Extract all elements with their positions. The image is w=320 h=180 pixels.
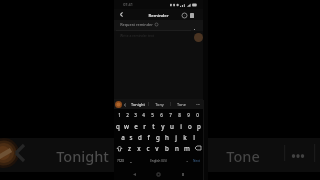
- button[interactable]: Recents: [178, 170, 187, 179]
- button[interactable]: w: [122, 120, 131, 131]
- button[interactable]: Home: [154, 170, 163, 179]
- button[interactable]: b: [162, 142, 172, 154]
- button[interactable]: v: [152, 142, 162, 154]
- staticText: x: [137, 144, 141, 152]
- staticText: w: [124, 122, 129, 130]
- staticText: u: [170, 122, 174, 130]
- staticText: •••: [291, 148, 305, 164]
- staticText: English (US): [150, 159, 167, 163]
- staticText: 3: [134, 112, 137, 118]
- button[interactable]: r: [140, 120, 149, 131]
- staticText: n: [175, 144, 179, 152]
- button[interactable]: e: [131, 120, 140, 131]
- staticText: Tone: [226, 146, 260, 166]
- button[interactable]: a: [119, 131, 127, 142]
- button[interactable]: Tone: [171, 99, 192, 109]
- button[interactable]: f: [144, 131, 153, 142]
- button[interactable]: 1: [115, 109, 123, 120]
- button[interactable]: n: [172, 142, 182, 154]
- staticText: v: [155, 144, 159, 152]
- button[interactable]: i: [176, 120, 185, 131]
- staticText: .: [186, 158, 188, 164]
- staticText: i: [180, 122, 182, 130]
- staticText: r: [143, 122, 146, 130]
- button[interactable]: Tonight: [127, 99, 148, 109]
- button[interactable]: Backspace: [192, 142, 203, 154]
- button[interactable]: Shift: [114, 142, 125, 154]
- button[interactable]: .: [183, 154, 190, 168]
- staticText: d: [138, 133, 142, 141]
- button[interactable]: Back: [117, 10, 126, 19]
- button[interactable]: ?123: [114, 154, 127, 168]
- button[interactable]: Send: [194, 33, 203, 42]
- button[interactable]: z: [125, 142, 134, 154]
- button[interactable]: More suggestions: [192, 99, 203, 109]
- staticText: o: [188, 122, 192, 130]
- staticText: k: [183, 133, 187, 141]
- button[interactable]: 3: [131, 109, 139, 120]
- staticText: •••: [196, 102, 200, 106]
- button[interactable]: Tony: [149, 99, 170, 109]
- staticText: 9: [187, 112, 190, 118]
- button[interactable]: 5: [148, 109, 157, 120]
- button[interactable]: j: [171, 131, 180, 142]
- staticText: g: [156, 133, 160, 141]
- button[interactable]: Back: [130, 170, 139, 179]
- staticText: ,: [130, 158, 132, 164]
- staticText: 5: [151, 112, 154, 118]
- button[interactable]: 7: [166, 109, 175, 120]
- button[interactable]: m: [182, 142, 192, 154]
- staticText: Tonight: [131, 102, 145, 107]
- staticText: t: [152, 122, 155, 130]
- staticText: j: [175, 133, 177, 141]
- button[interactable]: s: [127, 131, 135, 142]
- button[interactable]: u: [167, 120, 176, 131]
- button[interactable]: x: [134, 142, 143, 154]
- staticText: p: [197, 122, 201, 130]
- staticText: e: [134, 122, 138, 130]
- staticText: Tone: [177, 102, 186, 107]
- staticText: 8: [178, 112, 181, 118]
- staticText: m: [184, 144, 190, 152]
- staticText: l: [193, 133, 195, 141]
- staticText: Request reminder: [120, 22, 153, 27]
- button[interactable]: p: [194, 120, 203, 131]
- button[interactable]: k: [180, 131, 189, 142]
- staticText: 0: [196, 112, 199, 118]
- button[interactable]: 9: [184, 109, 193, 120]
- button[interactable]: 4: [139, 109, 148, 120]
- staticText: a: [121, 133, 125, 141]
- button[interactable]: o: [185, 120, 194, 131]
- button[interactable]: g: [153, 131, 162, 142]
- staticText: y: [161, 122, 165, 130]
- button[interactable]: More options: [188, 11, 196, 19]
- staticText: 1: [118, 112, 121, 118]
- button[interactable]: Help: [180, 11, 188, 19]
- button[interactable]: 2: [123, 109, 131, 120]
- staticText: Tonight: [56, 146, 109, 166]
- button[interactable]: Expand toolbar: [122, 102, 127, 107]
- button[interactable]: h: [162, 131, 171, 142]
- staticText: ?123: [117, 159, 124, 163]
- staticText: h: [165, 133, 169, 141]
- button[interactable]: c: [143, 142, 152, 154]
- button[interactable]: t: [149, 120, 158, 131]
- button[interactable]: l: [189, 131, 198, 142]
- staticText: z: [128, 144, 131, 152]
- staticText: 2: [126, 112, 129, 118]
- button[interactable]: Next: [190, 154, 203, 168]
- button[interactable]: 6: [157, 109, 166, 120]
- button[interactable]: y: [158, 120, 167, 131]
- button[interactable]: English (US): [134, 154, 183, 168]
- staticText: 07:41: [123, 2, 133, 7]
- button[interactable]: q: [114, 120, 122, 131]
- staticText: q: [116, 122, 120, 130]
- staticText: 7: [169, 112, 172, 118]
- button[interactable]: 8: [175, 109, 184, 120]
- staticText: s: [129, 133, 133, 141]
- staticText: Reminder: [148, 12, 169, 18]
- button[interactable]: ,: [127, 154, 134, 168]
- staticText: 4: [142, 112, 145, 118]
- button[interactable]: d: [135, 131, 144, 142]
- button[interactable]: 0: [193, 109, 202, 120]
